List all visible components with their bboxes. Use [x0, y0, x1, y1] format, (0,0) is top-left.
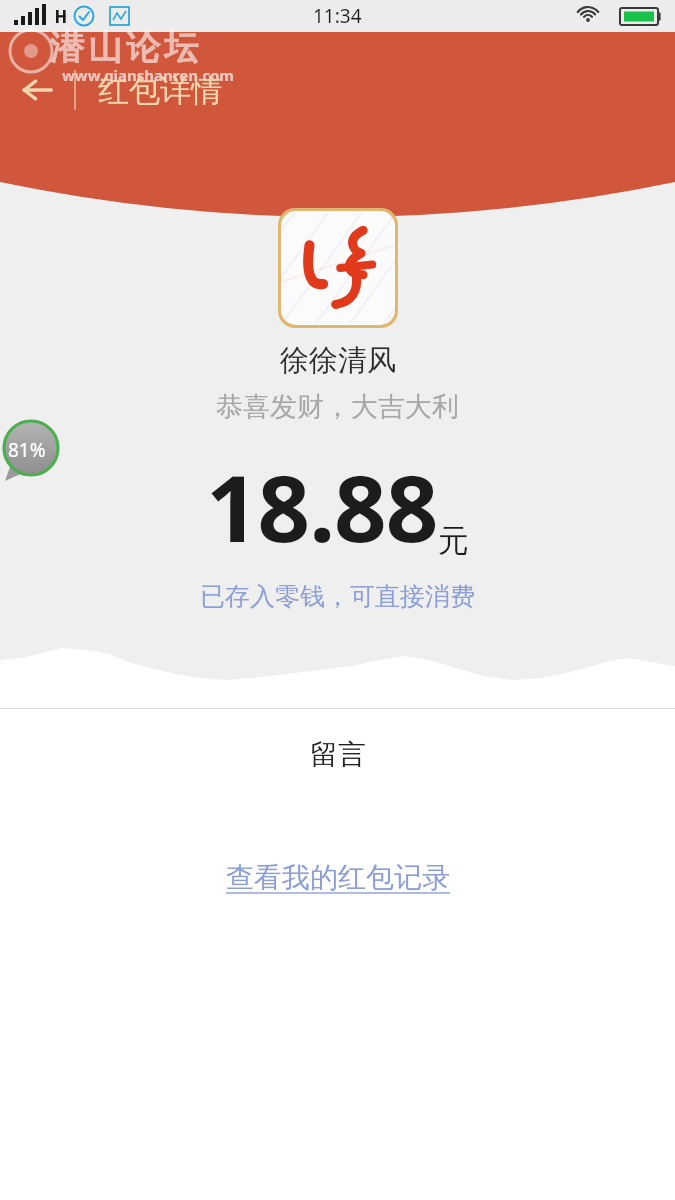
staticText: www.qianshanren.com: [62, 65, 234, 85]
staticText: 元: [438, 521, 469, 560]
staticText: 11:34: [313, 3, 362, 29]
staticText: 徐徐清风: [280, 342, 396, 379]
staticText: 81%: [8, 437, 46, 463]
staticText: 查看我的红包记录: [226, 860, 450, 895]
button[interactable]: 查看我的红包记录: [210, 854, 466, 901]
button[interactable]: Back: [0, 62, 74, 118]
staticText: 已存入零钱，可直接消费: [200, 581, 475, 612]
staticText: 恭喜发财，大吉大利: [216, 390, 459, 424]
button[interactable]: [281, 211, 395, 325]
button[interactable]: 留言: [310, 737, 366, 772]
staticText: 红包详情: [98, 71, 222, 110]
staticText: 潜山论坛: [48, 26, 200, 69]
staticText: 18.88: [206, 444, 438, 569]
